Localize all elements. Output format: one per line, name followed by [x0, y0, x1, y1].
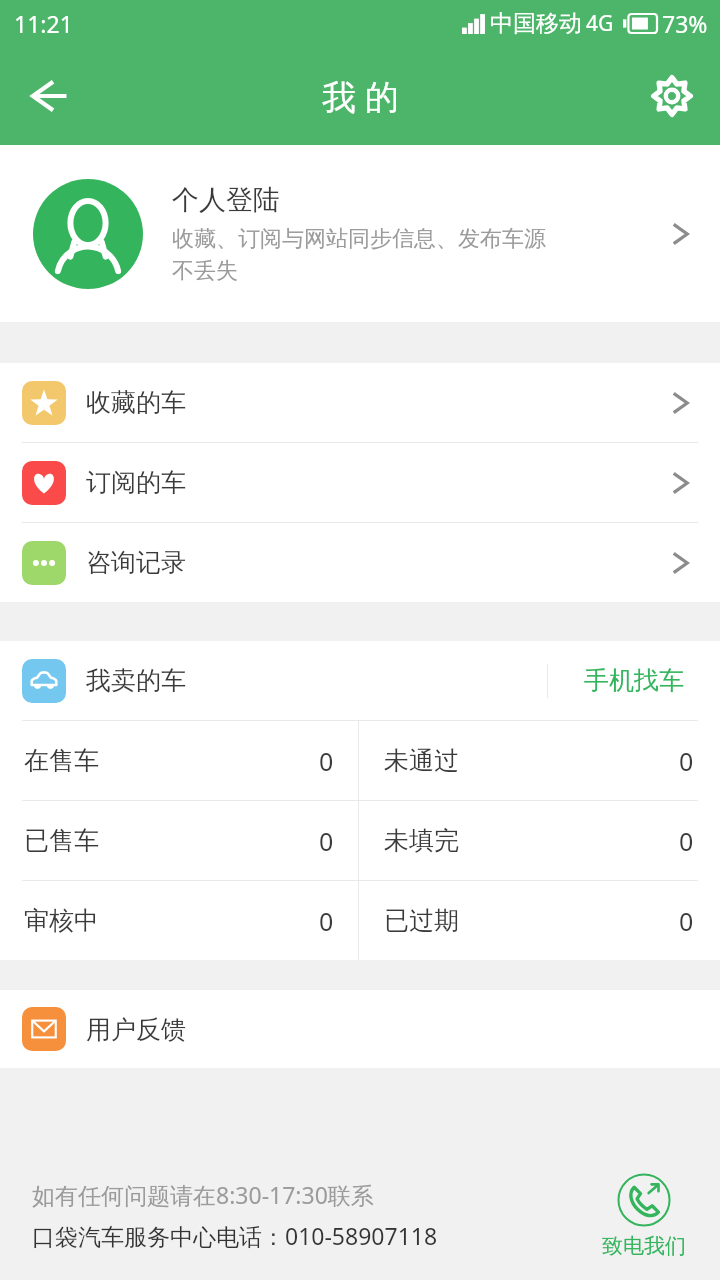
button[interactable]: 致电我们: [588, 1171, 700, 1259]
button[interactable]: 已售车: [0, 801, 360, 880]
button[interactable]: 已过期: [360, 881, 720, 960]
button[interactable]: Settings: [624, 48, 720, 144]
staticText: 订阅的车: [86, 467, 668, 498]
staticText: 审核中: [24, 905, 319, 936]
button[interactable]: 我卖的车: [0, 641, 547, 720]
button[interactable]: Back: [0, 48, 96, 144]
staticText: 致电我们: [602, 1233, 686, 1259]
button[interactable]: 在售车: [0, 721, 360, 800]
staticText: 在售车: [24, 745, 319, 776]
button[interactable]: 审核中: [0, 881, 360, 960]
staticText: 个人登陆: [172, 183, 280, 217]
staticText: 我 的: [322, 73, 399, 119]
button[interactable]: 用户反馈: [0, 990, 720, 1068]
button[interactable]: 手机找车: [548, 641, 720, 720]
button[interactable]: 个人登陆: [0, 145, 720, 322]
staticText: 4G: [586, 9, 614, 38]
staticText: 已售车: [24, 825, 319, 856]
staticText: 口袋汽车服务中心电话：010-58907118: [32, 1220, 438, 1251]
staticText: 0: [679, 824, 694, 858]
button[interactable]: 订阅的车: [0, 443, 720, 522]
button[interactable]: 收藏的车: [0, 363, 720, 442]
staticText: 未填完: [384, 825, 679, 856]
staticText: 0: [319, 904, 334, 938]
staticText: 收藏的车: [86, 387, 668, 418]
staticText: 0: [679, 904, 694, 938]
staticText: 未通过: [384, 745, 679, 776]
button[interactable]: 未通过: [360, 721, 720, 800]
staticText: 已过期: [384, 905, 679, 936]
staticText: 中国移动: [490, 9, 582, 38]
staticText: 咨询记录: [86, 547, 668, 578]
staticText: 0: [319, 744, 334, 778]
staticText: 11:21: [14, 8, 73, 39]
staticText: 不丢失: [172, 257, 238, 285]
staticText: 0: [319, 824, 334, 858]
staticText: 手机找车: [584, 665, 684, 696]
staticText: 0: [679, 744, 694, 778]
button[interactable]: 咨询记录: [0, 523, 720, 602]
staticText: 我卖的车: [86, 665, 186, 696]
button[interactable]: 未填完: [360, 801, 720, 880]
staticText: 收藏、订阅与网站同步信息、发布车源: [172, 225, 546, 253]
staticText: 73%: [662, 8, 708, 39]
staticText: 如有任何问题请在8:30-17:30联系: [32, 1179, 374, 1210]
staticText: 用户反馈: [86, 1014, 186, 1045]
